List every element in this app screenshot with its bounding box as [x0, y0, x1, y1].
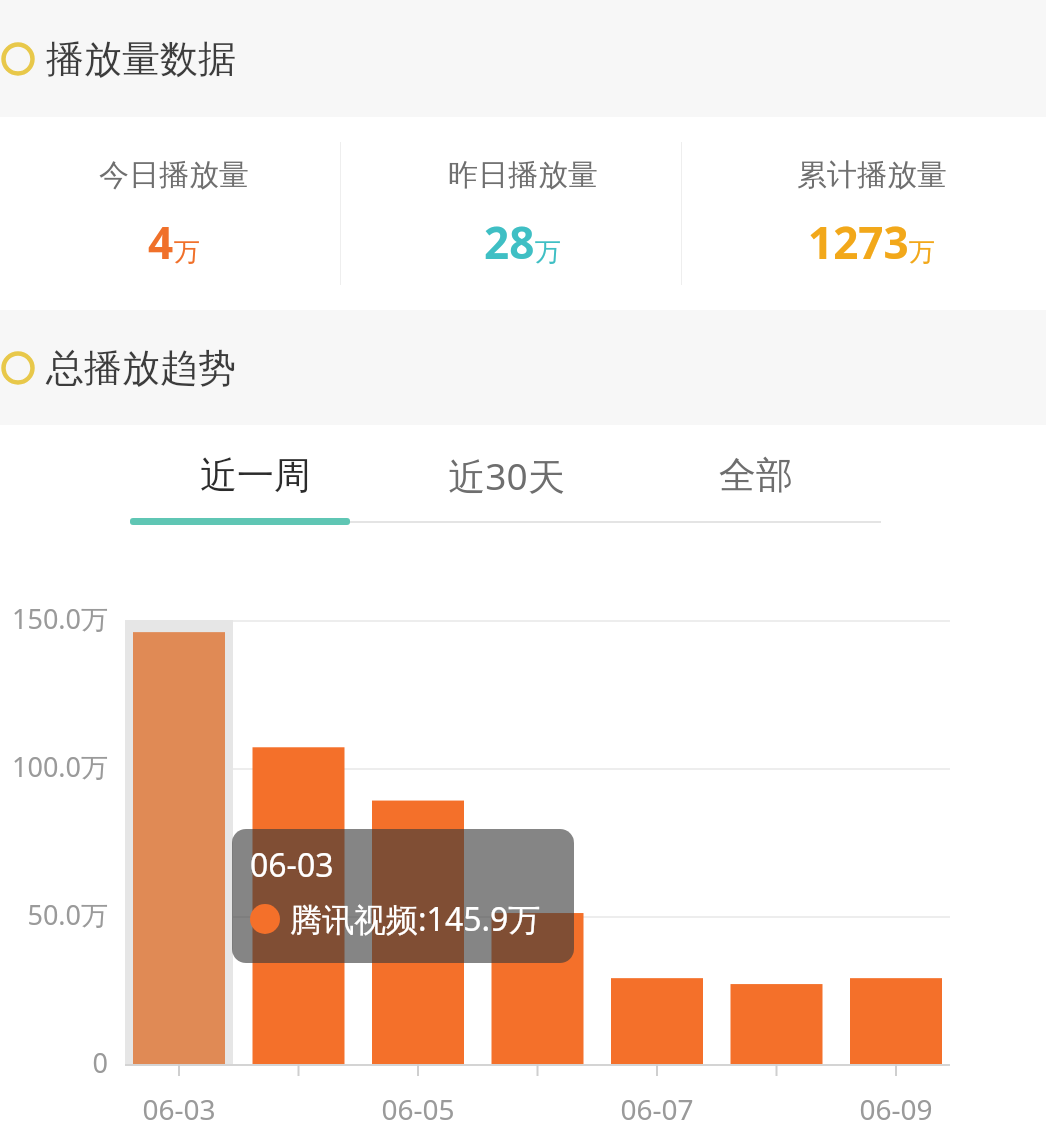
staticText: 总播放趋势 — [46, 344, 236, 392]
staticText: 近一周 — [200, 452, 311, 499]
staticText: 06-05 — [381, 1090, 455, 1128]
staticText: 50.0万 — [27, 896, 108, 933]
button[interactable]: 全部 — [631, 425, 881, 525]
staticText: 累计播放量 — [797, 156, 947, 194]
button[interactable]: 06-03 — [232, 829, 574, 963]
staticText: 今日播放量 — [99, 156, 249, 194]
staticText: 0 — [92, 1044, 108, 1081]
staticText: 100.0万 — [11, 748, 108, 785]
staticText: 万 — [909, 236, 935, 269]
staticText: 近30天 — [448, 450, 565, 501]
staticText: 06-03 — [250, 843, 334, 887]
staticText: 1273 — [808, 212, 909, 272]
staticText: 4 — [148, 212, 174, 272]
staticText: 全部 — [719, 452, 793, 499]
staticText: 万 — [174, 236, 200, 269]
staticText: 昨日播放量 — [448, 156, 598, 194]
button[interactable]: 今日播放量 — [0, 117, 348, 310]
staticText: 万 — [535, 236, 561, 269]
button[interactable]: 近一周 — [130, 425, 381, 525]
staticText: 150.0万 — [11, 600, 108, 637]
staticText: 28 — [484, 212, 535, 272]
button[interactable]: 累计播放量 — [697, 117, 1046, 310]
staticText: 播放量数据 — [46, 35, 236, 83]
staticText: 06-09 — [859, 1090, 933, 1128]
staticText: 06-07 — [620, 1090, 694, 1128]
button[interactable]: 昨日播放量 — [348, 117, 697, 310]
staticText: 腾讯视频:145.9万 — [290, 897, 541, 941]
staticText: 06-03 — [142, 1090, 216, 1128]
button[interactable]: 近30天 — [381, 425, 631, 525]
